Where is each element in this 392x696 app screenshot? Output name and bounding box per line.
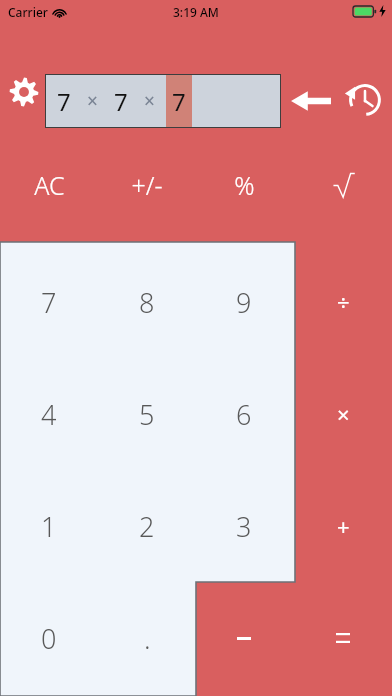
button[interactable]: × (294, 358, 392, 470)
staticText: 3:19 AM (173, 4, 219, 20)
button[interactable]: 5 (98, 358, 196, 470)
button[interactable]: Square root (295, 155, 392, 215)
button[interactable]: 3 (195, 470, 293, 582)
button[interactable]: 4 (0, 358, 98, 470)
button[interactable]: Settings (6, 74, 42, 110)
staticText: × (87, 88, 98, 114)
staticText: % (234, 168, 255, 202)
staticText: 7 (57, 85, 71, 118)
button[interactable]: 7 (45, 74, 281, 128)
staticText: . (144, 620, 151, 657)
staticText: 8 (139, 284, 155, 321)
button[interactable]: ÷ (294, 246, 392, 358)
button[interactable]: 1 (0, 470, 98, 582)
staticText: + (337, 511, 350, 541)
button[interactable]: % (195, 155, 293, 215)
button[interactable]: 6 (195, 358, 293, 470)
button[interactable]: 8 (98, 246, 196, 358)
staticText: 7 (114, 85, 128, 118)
staticText: 7 (41, 284, 57, 321)
button[interactable]: 2 (98, 470, 196, 582)
button[interactable]: History (341, 76, 389, 124)
button[interactable]: Minus (195, 582, 293, 694)
staticText: 4 (41, 396, 57, 433)
staticText: × (144, 88, 155, 114)
staticText: AC (34, 168, 65, 202)
staticText: 7 (172, 85, 186, 118)
staticText: × (337, 399, 350, 429)
staticText: ÷ (337, 287, 350, 317)
staticText: +/- (131, 168, 163, 202)
button[interactable]: Equals (294, 582, 392, 694)
button[interactable]: AC (0, 155, 98, 215)
staticText: 6 (236, 396, 252, 433)
staticText: 2 (139, 508, 155, 545)
button[interactable]: +/- (98, 155, 196, 215)
staticText: 1 (41, 508, 57, 545)
button[interactable]: . (98, 582, 196, 694)
staticText: 9 (236, 284, 252, 321)
button[interactable]: + (294, 470, 392, 582)
button[interactable]: Backspace (286, 83, 336, 119)
staticText: Carrier (8, 4, 48, 20)
button[interactable]: 9 (195, 246, 293, 358)
staticText: 5 (139, 396, 155, 433)
button[interactable]: 0 (0, 582, 98, 694)
staticText: 3 (236, 508, 252, 545)
staticText: 0 (41, 620, 57, 657)
button[interactable]: 7 (0, 246, 98, 358)
